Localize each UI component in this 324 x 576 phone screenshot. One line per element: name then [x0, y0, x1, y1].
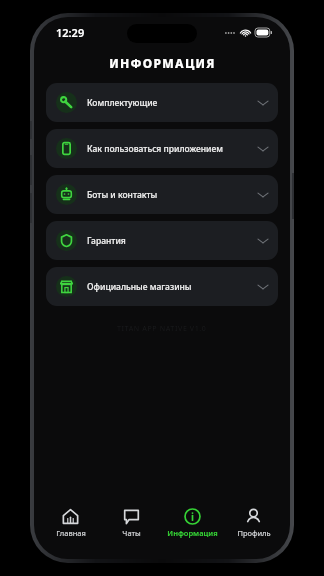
- staticText: 12:29: [56, 25, 85, 40]
- staticText: Комплектующие: [87, 97, 258, 109]
- staticText: TITAN APP NATIVE V1.0: [117, 324, 207, 334]
- button[interactable]: Боты и контакты: [46, 175, 278, 214]
- staticText: Чаты: [122, 528, 141, 538]
- button[interactable]: Главная: [40, 501, 101, 545]
- button[interactable]: Как пользоваться приложением: [46, 129, 278, 168]
- staticText: Как пользоваться приложением: [87, 143, 258, 155]
- button[interactable]: Профиль: [223, 501, 284, 545]
- button[interactable]: Официальные магазины: [46, 267, 278, 306]
- staticText: Информация: [167, 528, 218, 538]
- staticText: Официальные магазины: [87, 281, 258, 293]
- staticText: Гарантия: [87, 235, 258, 247]
- staticText: ИНФОРМАЦИЯ: [109, 55, 216, 71]
- staticText: Профиль: [237, 528, 271, 538]
- button[interactable]: Информация: [162, 501, 223, 545]
- staticText: Боты и контакты: [87, 189, 258, 201]
- button[interactable]: Комплектующие: [46, 83, 278, 122]
- button[interactable]: Чаты: [101, 501, 162, 545]
- staticText: Главная: [56, 528, 86, 538]
- button[interactable]: Гарантия: [46, 221, 278, 260]
